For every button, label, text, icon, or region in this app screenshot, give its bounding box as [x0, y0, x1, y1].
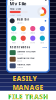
button[interactable]: Videos — [28, 26, 38, 34]
staticText: Summer trip.mp4 — [17, 50, 35, 53]
staticText: Meeting rec.mov — [17, 56, 34, 59]
staticText: Apps — [12, 41, 16, 44]
button[interactable]: Tutorial.mp4 — [7, 62, 49, 69]
button[interactable]: Apps — [9, 36, 18, 44]
staticText: Music — [21, 32, 26, 34]
button[interactable]: More — [28, 36, 38, 44]
staticText: Photos — [11, 32, 17, 34]
button[interactable]: Cloud — [37, 36, 47, 44]
button[interactable]: Summer trip.mp4 — [7, 49, 49, 56]
staticText: Trash Bin — [16, 18, 29, 21]
staticText: FILE TRASH — [8, 92, 48, 100]
staticText: Total Used — [10, 7, 21, 10]
button[interactable]: Music — [18, 26, 28, 34]
staticText: 12 items — [16, 21, 23, 24]
staticText: See all — [42, 46, 46, 48]
staticText: EASILY MANAGE — [12, 74, 43, 92]
staticText: Cloud — [40, 41, 44, 44]
staticText: 210 MB — [17, 66, 23, 69]
staticText: Zip — [22, 41, 24, 44]
staticText: 124 MB — [17, 53, 23, 55]
staticText: My File — [9, 0, 26, 7]
staticText: Recent videos — [10, 45, 30, 49]
staticText: 9:41 — [9, 0, 13, 1]
staticText: Videos — [30, 32, 35, 34]
button[interactable]: Photos — [9, 26, 18, 34]
button[interactable]: Docs — [37, 26, 47, 34]
staticText: 64 GB of 128 GB — [10, 14, 21, 16]
button[interactable]: Trash Bin — [7, 17, 49, 25]
staticText: ▮▮ — [44, 0, 46, 1]
staticText: More — [30, 41, 35, 44]
staticText: Docs — [40, 32, 44, 34]
button[interactable]: Zip — [18, 36, 28, 44]
staticText: Tutorial.mp4 — [17, 63, 30, 66]
button[interactable]: Meeting rec.mov — [7, 56, 49, 62]
